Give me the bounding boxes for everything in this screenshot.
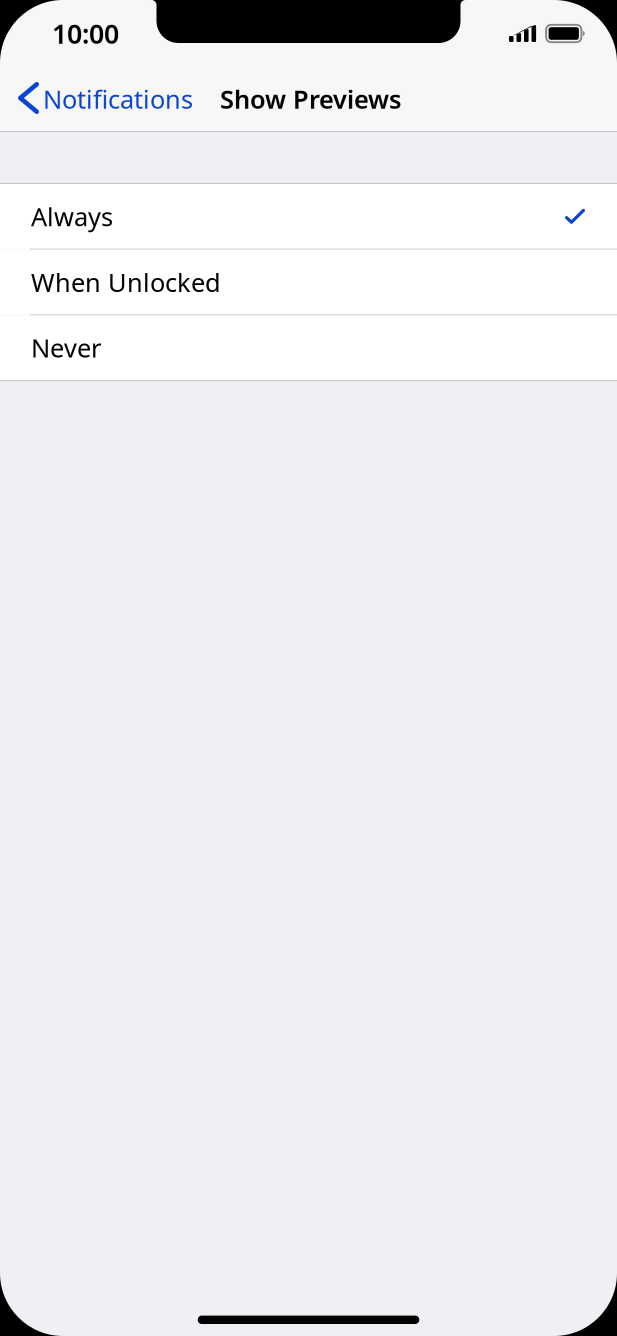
staticText: Never xyxy=(31,331,101,364)
button[interactable]: Always xyxy=(0,184,617,249)
button[interactable]: When Unlocked xyxy=(0,250,617,314)
staticText: Show Previews xyxy=(220,82,401,116)
staticText: 10:00 xyxy=(52,16,119,51)
staticText: When Unlocked xyxy=(31,265,221,299)
button[interactable]: Notifications xyxy=(0,65,207,131)
staticText: Notifications xyxy=(43,82,193,116)
button[interactable]: Never xyxy=(0,315,617,380)
staticText: Always xyxy=(31,199,113,233)
